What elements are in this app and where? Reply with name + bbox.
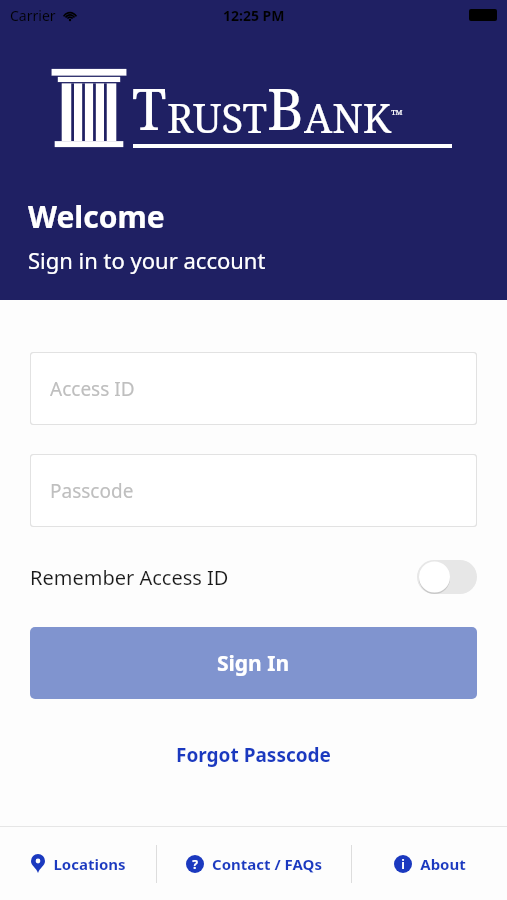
button[interactable]: Remember Access ID bbox=[30, 554, 477, 600]
staticText: Welcome bbox=[28, 196, 165, 237]
staticText: 12:25 PM bbox=[223, 6, 285, 25]
other: Locations bbox=[31, 854, 45, 873]
staticText: Access ID bbox=[50, 376, 135, 402]
staticText: ANK bbox=[304, 90, 391, 144]
staticText: RUST bbox=[167, 90, 267, 144]
staticText: Remember Access ID bbox=[30, 564, 229, 591]
staticText: Sign In bbox=[217, 649, 290, 678]
staticText: T bbox=[132, 70, 167, 146]
button[interactable]: About bbox=[352, 827, 507, 900]
button[interactable]: Access ID bbox=[30, 352, 477, 425]
staticText: ? bbox=[192, 856, 198, 872]
button[interactable]: Forgot Passcode bbox=[0, 742, 507, 768]
staticText: Passcode bbox=[50, 478, 134, 504]
staticText: Forgot Passcode bbox=[176, 742, 331, 768]
staticText: Locations bbox=[53, 854, 126, 874]
staticText: i bbox=[401, 856, 405, 872]
button[interactable]: Contact and FAQs bbox=[157, 827, 351, 900]
button[interactable]: Passcode bbox=[30, 454, 477, 527]
button[interactable]: Sign In bbox=[30, 627, 477, 699]
staticText: About bbox=[420, 854, 466, 874]
button[interactable]: Locations bbox=[0, 827, 156, 900]
staticText: B bbox=[267, 70, 304, 146]
other: Contact and FAQs bbox=[186, 855, 204, 873]
staticText: Contact / FAQs bbox=[212, 854, 322, 874]
staticText: Sign in to your account bbox=[28, 245, 266, 275]
other: About bbox=[394, 855, 412, 873]
staticText: Carrier bbox=[10, 6, 56, 25]
staticText: ™ bbox=[391, 105, 403, 124]
